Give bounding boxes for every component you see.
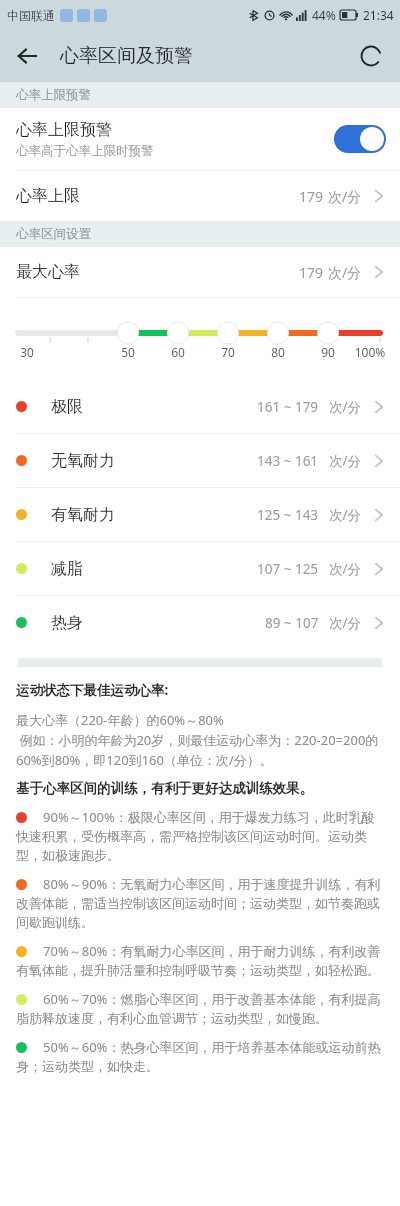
button[interactable]: 减脂 [0,542,400,595]
staticText: 80 [262,344,294,360]
staticText: 21:34 [363,7,394,23]
staticText: 80%～90%：无氧耐力心率区间，用于速度提升训练，有利改善体能，需适当控制该区… [16,875,386,931]
staticText: 143 ~ 161 [257,452,319,470]
button[interactable]: 热身 [0,596,400,649]
staticText: 60 [162,344,194,360]
staticText: 次/分 [329,560,362,578]
staticText: 心率上限预警 [16,87,91,103]
staticText: 30 [11,344,43,360]
staticText: 90%～100%：极限心率区间，用于爆发力练习，此时乳酸快速积累，受伤概率高，需… [16,808,386,864]
button[interactable]: 极限 [0,380,400,433]
staticText: 中国联通 [7,8,55,23]
staticText: 100% [354,344,386,360]
staticText: 基于心率区间的训练，有利于更好达成训练效果。 [16,780,313,797]
staticText: 最大心率（220-年龄）的60%～80% 例如：小明的年龄为20岁，则最佳运动心… [16,711,386,769]
button[interactable]: Refresh [350,35,392,77]
staticText: 161 ~ 179 [257,398,319,416]
button[interactable]: 无氧耐力 [0,434,400,487]
staticText: 无氧耐力 [51,451,257,471]
staticText: 次/分 [328,187,362,206]
staticText: 次/分 [329,506,362,524]
button[interactable]: 心率上限预警 [0,108,400,170]
staticText: 心率高于心率上限时预警 [16,143,154,159]
staticText: 心率上限预警 [16,120,112,140]
staticText: 次/分 [329,614,362,632]
button[interactable]: Toggle alert [334,125,386,153]
staticText: 60%～70%：燃脂心率区间，用于改善基本体能，有利提高脂肪释放速度，有利心血管… [16,990,386,1027]
staticText: 极限 [51,397,257,417]
staticText: 179 [299,263,324,282]
button[interactable]: 心率上限 [0,171,400,221]
button[interactable]: Back [6,35,48,77]
staticText: 有氧耐力 [51,505,257,525]
staticText: 次/分 [328,263,362,282]
button[interactable]: 有氧耐力 [0,488,400,541]
staticText: 50 [112,344,144,360]
staticText: 107 ~ 125 [257,560,319,578]
staticText: 70%～80%：有氧耐力心率区间，用于耐力训练，有利改善有氧体能，提升肺活量和控… [16,942,386,979]
staticText: 90 [312,344,344,360]
staticText: 89 ~ 107 [265,614,319,632]
staticText: 心率上限 [16,186,299,206]
staticText: 运动状态下最佳运动心率: [16,681,169,699]
staticText: 热身 [51,613,265,633]
staticText: 70 [212,344,244,360]
staticText: 最大心率 [16,262,299,282]
staticText: 次/分 [329,398,362,416]
staticText: 50%～60%：热身心率区间，用于培养基本体能或运动前热身；运动类型，如快走。 [16,1038,386,1075]
staticText: 44% [312,7,336,23]
staticText: 心率区间及预警 [60,44,193,68]
staticText: 179 [299,187,324,206]
staticText: 减脂 [51,559,257,579]
staticText: 125 ~ 143 [257,506,319,524]
button[interactable]: 最大心率 [0,247,400,297]
staticText: 次/分 [329,452,362,470]
staticText: 心率区间设置 [16,226,91,242]
